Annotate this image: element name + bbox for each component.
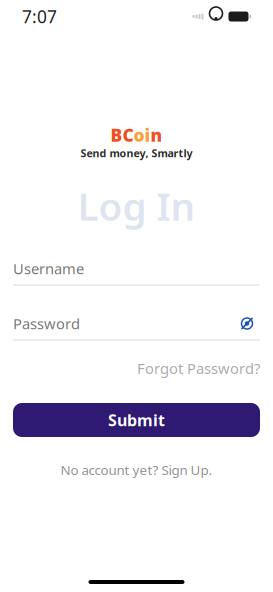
staticText: Log In [77,180,195,231]
button[interactable]: Forgot Password? [137,358,260,378]
staticText: n [150,123,162,146]
button[interactable]: Show password [234,312,260,334]
staticText: Forgot Password? [137,358,260,378]
staticText: No account yet? Sign Up. [60,461,212,479]
button[interactable]: Submit [13,403,260,437]
staticText: Username [13,259,84,278]
staticText: Send money, Smartly [80,146,192,160]
staticText: i [144,123,150,146]
staticText: Password [13,314,80,333]
staticText: Submit [108,409,165,431]
staticText: o [133,123,144,146]
button[interactable]: No account yet? Sign Up. [60,461,212,479]
staticText: 7:07 [22,5,57,28]
staticText: BC [110,123,133,146]
